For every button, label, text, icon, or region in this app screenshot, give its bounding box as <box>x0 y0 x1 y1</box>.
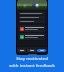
button[interactable]: Activity item <box>19 33 45 40</box>
button[interactable] <box>19 16 45 19</box>
button[interactable]: Featured photo <box>17 0 47 11</box>
button[interactable]: Primary action <box>37 49 46 52</box>
button[interactable]: Option two <box>27 49 36 52</box>
other: Activity item <box>20 35 24 39</box>
staticText: Stay motivated <box>16 56 48 62</box>
button[interactable]: Option one <box>18 49 26 52</box>
other: Alert item <box>20 27 24 31</box>
button[interactable] <box>19 20 45 23</box>
button[interactable] <box>19 12 45 15</box>
staticText: with instant feedback <box>9 63 55 69</box>
button[interactable]: Alert item <box>19 25 45 32</box>
